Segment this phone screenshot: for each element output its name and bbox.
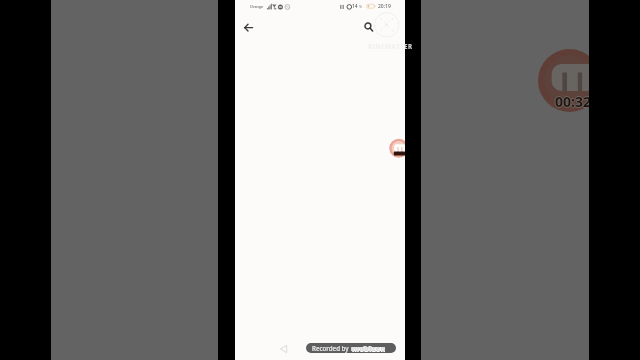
button[interactable]: Recorded by [306, 343, 396, 353]
staticText: KINEMASTER [405, 42, 413, 50]
staticText: mobizen [352, 344, 386, 353]
staticText: Orange [250, 4, 264, 9]
staticText: 00:32 [556, 92, 592, 111]
staticText: KINEMASTER [368, 42, 413, 50]
button[interactable]: Search [357, 15, 379, 37]
staticText: 00:32 [555, 93, 591, 112]
staticText: mobizen [352, 343, 386, 353]
staticText: % [359, 4, 362, 9]
staticText: Recorded by [312, 344, 349, 352]
staticText: mobizen [352, 343, 386, 353]
staticText: 00:32 [555, 92, 591, 111]
button[interactable]: Back [237, 17, 259, 39]
staticText: mobizen [352, 343, 386, 353]
staticText: 00:32 [555, 91, 591, 110]
staticText: 20:19 [378, 3, 391, 10]
staticText: 00:32 [554, 92, 590, 111]
staticText: 14 [352, 3, 358, 10]
staticText: mobizen [351, 343, 385, 353]
button[interactable]: Back [279, 343, 290, 354]
